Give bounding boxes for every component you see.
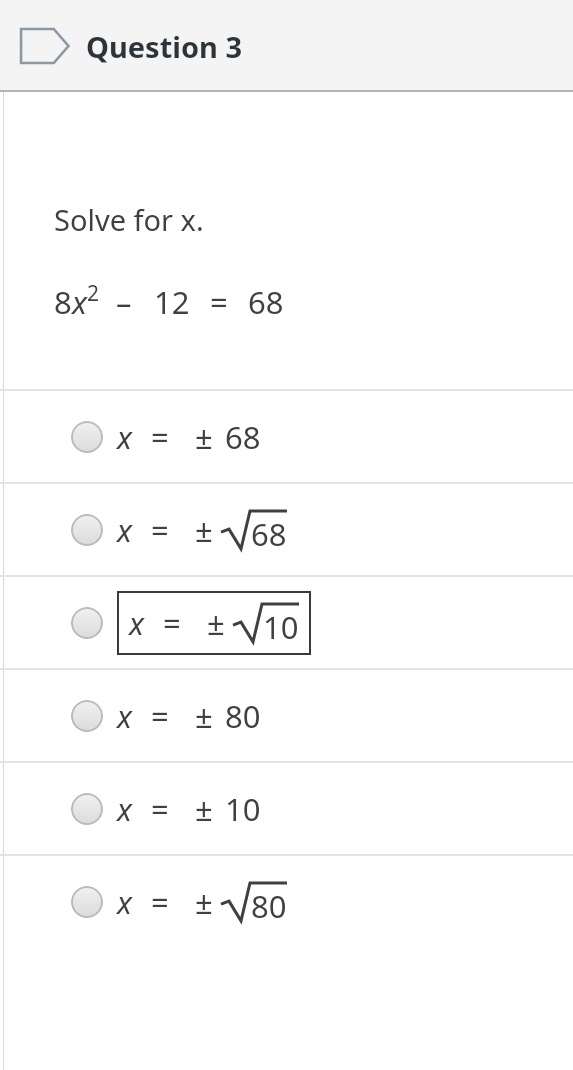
button[interactable]: x [0,670,573,761]
staticText: x [117,881,132,923]
staticText: 80 [225,695,261,737]
staticText: ± [195,695,213,737]
staticText: 12 [154,281,190,323]
staticText: 2 [87,279,100,308]
staticText: 80 [251,885,287,927]
staticText: x [129,602,144,644]
staticText: ± [195,416,213,458]
staticText: 10 [263,606,299,648]
button[interactable]: x [0,577,573,668]
button[interactable]: x [0,856,573,947]
staticText: – [116,281,132,323]
staticText: = [151,788,169,830]
button[interactable]: x [0,391,573,482]
staticText: 68 [225,416,261,458]
staticText: = [151,881,169,923]
staticText: 8 [54,281,72,323]
staticText: Question 3 [86,27,243,66]
staticText: ± [195,788,213,830]
staticText: = [151,416,169,458]
other: Question marker [18,23,69,69]
staticText: x [117,788,132,830]
staticText: = [151,695,169,737]
button[interactable]: x [0,763,573,854]
staticText: = [210,281,228,323]
staticText: 10 [225,788,261,830]
staticText: 68 [251,513,287,555]
staticText: = [163,602,181,644]
staticText: x [117,695,132,737]
staticText: Solve for x. [54,200,204,239]
staticText: x [117,509,132,551]
staticText: ± [195,509,213,551]
button[interactable]: x [0,484,573,575]
staticText: ± [207,602,225,644]
staticText: 68 [248,281,284,323]
staticText: = [151,509,169,551]
staticText: ± [195,881,213,923]
staticText: x [117,416,132,458]
staticText: x [72,281,87,323]
